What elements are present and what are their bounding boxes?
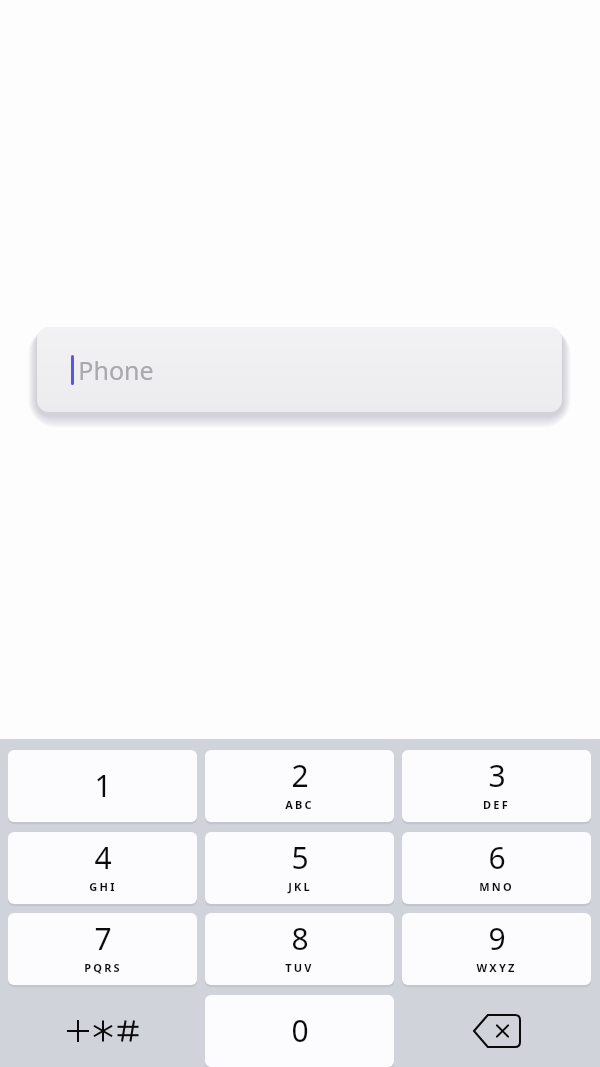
- button[interactable]: 2: [205, 750, 394, 822]
- staticText: TUV: [285, 960, 314, 975]
- staticText: Phone: [78, 353, 154, 387]
- button[interactable]: Plus star hash: [8, 995, 197, 1067]
- button[interactable]: 5: [205, 832, 394, 904]
- staticText: ABC: [285, 797, 314, 812]
- staticText: PQRS: [84, 960, 122, 975]
- staticText: 0: [291, 1010, 309, 1051]
- staticText: JKL: [288, 879, 312, 894]
- staticText: 9: [488, 918, 506, 959]
- button[interactable]: Phone: [37, 327, 562, 412]
- staticText: GHI: [89, 879, 117, 894]
- button[interactable]: 1: [8, 750, 197, 822]
- button[interactable]: 9: [402, 913, 591, 985]
- button[interactable]: Backspace: [402, 995, 591, 1067]
- staticText: 1: [94, 765, 112, 806]
- button[interactable]: 7: [8, 913, 197, 985]
- button[interactable]: 4: [8, 832, 197, 904]
- staticText: DEF: [483, 797, 510, 812]
- staticText: 8: [291, 918, 309, 959]
- button[interactable]: 8: [205, 913, 394, 985]
- staticText: 6: [488, 837, 506, 878]
- staticText: 3: [488, 755, 506, 796]
- button[interactable]: 6: [402, 832, 591, 904]
- staticText: MNO: [479, 879, 514, 894]
- staticText: 4: [94, 837, 112, 878]
- staticText: 2: [291, 755, 309, 796]
- staticText: 5: [291, 837, 309, 878]
- staticText: WXYZ: [476, 960, 517, 975]
- button[interactable]: 3: [402, 750, 591, 822]
- staticText: 7: [94, 918, 112, 959]
- button[interactable]: 0: [205, 995, 394, 1067]
